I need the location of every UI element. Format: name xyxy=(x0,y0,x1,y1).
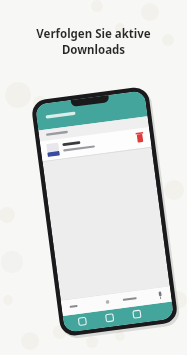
staticText: Verfolgen Sie aktive Downloads xyxy=(10,26,177,57)
button[interactable]: Downloads app preview xyxy=(0,0,187,355)
